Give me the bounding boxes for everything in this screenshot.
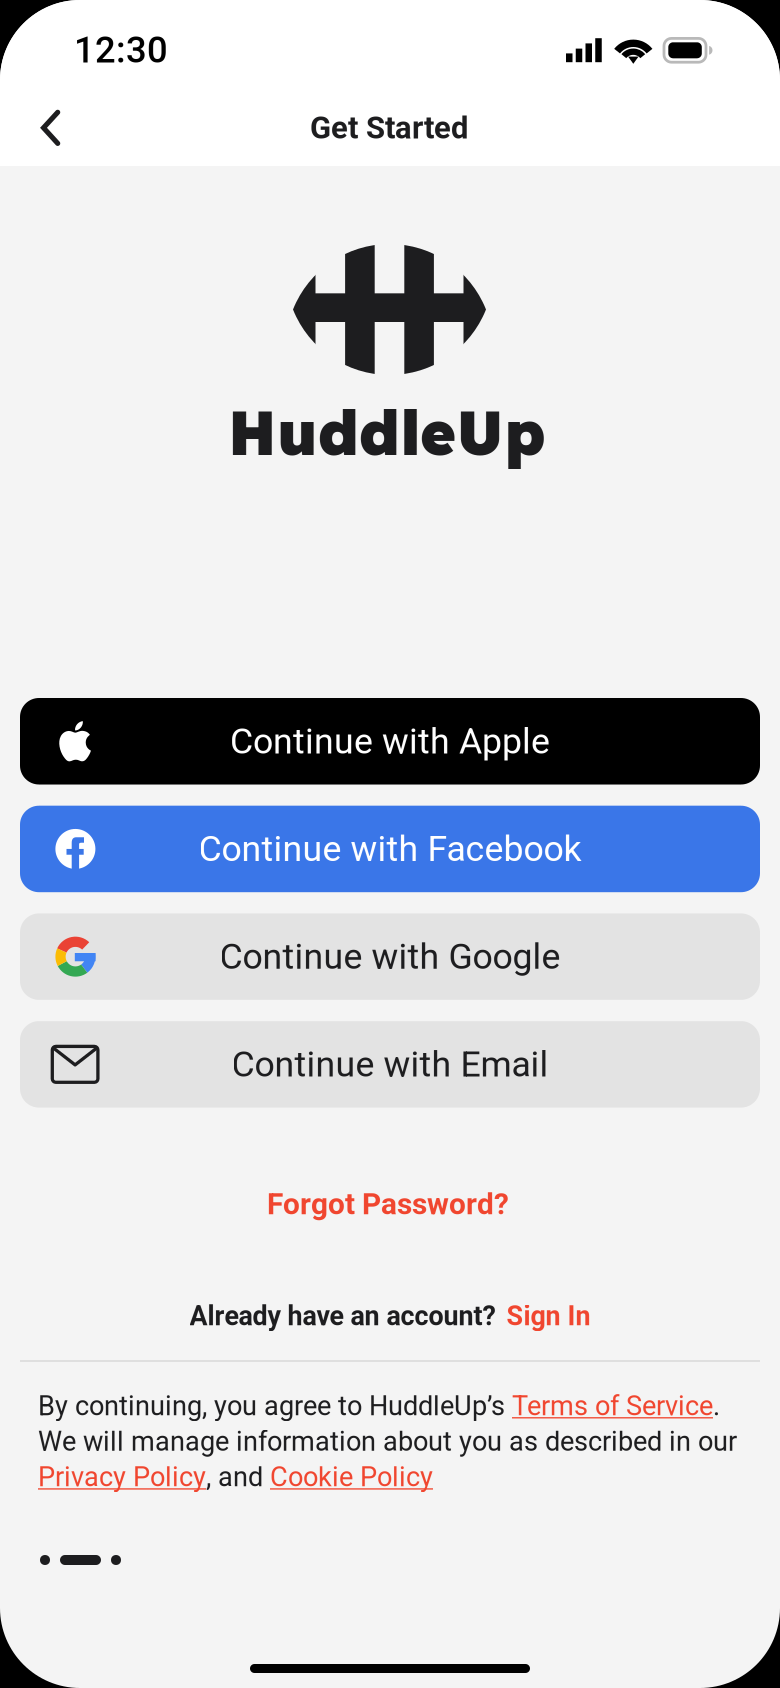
staticText: , and [206, 1461, 270, 1493]
button[interactable]: Continue with Facebook [20, 806, 760, 892]
staticText: Privacy Policy [38, 1461, 206, 1493]
button[interactable]: Back [0, 88, 100, 168]
staticText: 12:30 [74, 29, 168, 71]
button[interactable]: Cookie Policy [270, 1461, 433, 1493]
staticText: Continue with Apple [230, 720, 550, 762]
staticText: We will manage information about you as … [38, 1426, 737, 1457]
staticText: Cookie Policy [270, 1461, 433, 1493]
staticText: Sign In [506, 1300, 590, 1332]
staticText: Terms of Service [512, 1390, 713, 1422]
staticText: Already have an account? [189, 1300, 495, 1332]
button[interactable]: Continue with Apple [20, 698, 760, 784]
staticText: . [713, 1390, 720, 1422]
staticText: Continue with Google [219, 936, 560, 977]
button[interactable]: Terms of Service [512, 1390, 713, 1422]
staticText: By continuing, you agree to HuddleUp’s [38, 1390, 512, 1422]
staticText: Continue with Facebook [198, 828, 581, 870]
staticText: Get Started [310, 110, 468, 146]
button[interactable]: Continue with Google [20, 913, 760, 1000]
button[interactable]: Continue with Email [20, 1021, 760, 1108]
staticText: Continue with Email [231, 1043, 548, 1085]
staticText: Forgot Password? [267, 1187, 509, 1221]
button[interactable]: Privacy Policy [38, 1461, 206, 1493]
button[interactable]: Sign In [506, 1300, 590, 1332]
staticText: HuddleUp [228, 394, 546, 470]
button[interactable]: Forgot Password? [218, 1174, 558, 1234]
